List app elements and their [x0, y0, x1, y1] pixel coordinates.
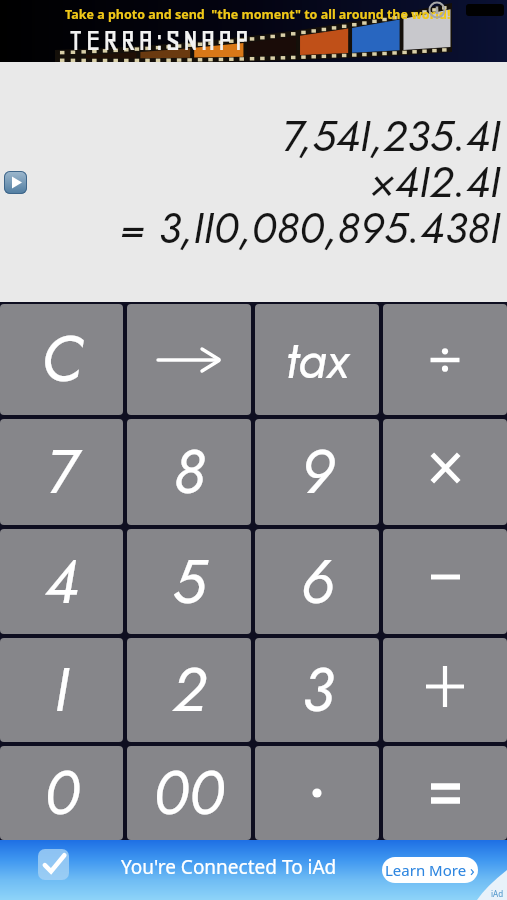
button[interactable]: 3 [255, 638, 379, 742]
button[interactable]: 9 [255, 419, 379, 525]
staticText: I [54, 646, 69, 734]
staticText: You're Connected To iAd [121, 854, 337, 880]
button[interactable] [383, 746, 507, 840]
button[interactable]: tax [255, 304, 379, 415]
button[interactable] [383, 529, 507, 634]
staticText: 4 [44, 538, 79, 626]
staticText: 8 [173, 428, 206, 516]
button[interactable] [383, 304, 507, 415]
button[interactable] [255, 746, 379, 840]
button[interactable]: 8 [127, 419, 251, 525]
staticText: 9 [300, 428, 335, 516]
staticText: iAd [491, 888, 504, 899]
button[interactable]: Learn More › [382, 857, 478, 883]
button[interactable]: 0 [0, 746, 123, 840]
staticText: 00 [153, 749, 225, 837]
staticText: 3 [301, 646, 334, 734]
button[interactable]: Take a photo and send "the moment" to al… [0, 0, 507, 62]
staticText: 7,54I,235.4I ×4I2.4I = 3,II0,080,895.438… [119, 105, 500, 260]
button[interactable] [383, 638, 507, 742]
staticText: 0 [44, 749, 80, 837]
staticText: 5 [172, 538, 206, 626]
staticText: 7 [46, 428, 78, 516]
staticText: C [41, 314, 83, 405]
button[interactable] [4, 171, 27, 194]
button[interactable]: 2 [127, 638, 251, 742]
staticText: 2 [172, 646, 206, 734]
button[interactable]: 6 [255, 529, 379, 634]
button[interactable]: 5 [127, 529, 251, 634]
button[interactable]: C [0, 304, 123, 415]
button[interactable]: 7 [0, 419, 123, 525]
staticText: Learn More › [385, 860, 475, 880]
button[interactable] [383, 419, 507, 525]
staticText: 6 [300, 538, 335, 626]
button[interactable]: 4 [0, 529, 123, 634]
staticText: TERRA:SNAPP [68, 24, 252, 58]
button[interactable]: I [0, 638, 123, 742]
button[interactable]: You're Connected To iAd [0, 840, 507, 900]
button[interactable]: 00 [127, 746, 251, 840]
staticText: Take a photo and send "the moment" to al… [65, 6, 451, 23]
button[interactable] [127, 304, 251, 415]
staticText: tax [286, 322, 349, 397]
